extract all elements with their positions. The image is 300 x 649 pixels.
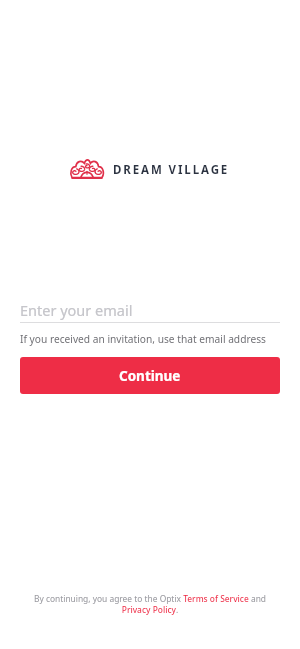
other: Dream Village logo bbox=[70, 157, 104, 183]
staticText: Enter your email bbox=[20, 300, 133, 320]
button[interactable]: By continuing, you agree to the Optix Te… bbox=[22, 593, 278, 615]
button[interactable]: Enter your email bbox=[20, 297, 280, 322]
button[interactable]: Continue bbox=[20, 357, 280, 394]
staticText: If you received an invitation, use that … bbox=[20, 332, 266, 346]
staticText: DREAM VILLAGE bbox=[113, 162, 230, 178]
staticText: Continue bbox=[119, 367, 181, 385]
